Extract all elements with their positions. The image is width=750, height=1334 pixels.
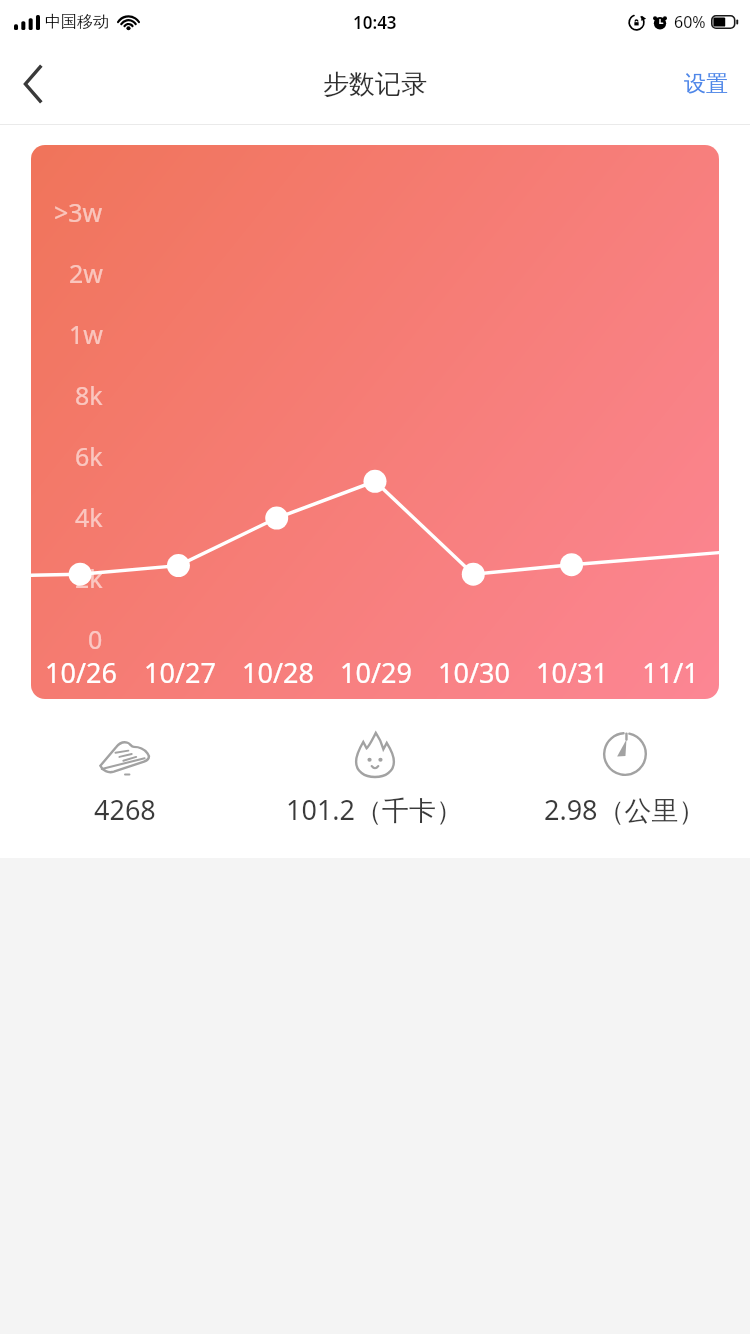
staticText: 6k [75,439,103,471]
staticText: 101.2（千卡） [286,791,464,828]
staticText: 10/31 [536,654,608,691]
button[interactable]: >3w [31,145,719,699]
staticText: 10/28 [242,654,314,691]
staticText: 8k [75,378,103,410]
staticText: 中国移动 [45,12,109,32]
button[interactable]: Distance [500,725,750,828]
button[interactable]: Back [0,44,66,124]
staticText: 2k [75,561,103,593]
staticText: 步数记录 [323,68,427,101]
staticText: 10/27 [144,654,216,691]
staticText: 1w [69,317,103,349]
button[interactable]: Steps [0,725,250,828]
staticText: 11/1 [642,654,699,691]
staticText: 2.98（公里） [544,791,706,828]
button[interactable]: 设置 [662,44,750,124]
staticText: 设置 [684,70,728,98]
staticText: 10:43 [353,11,397,34]
staticText: 4268 [94,791,156,828]
staticText: 10/29 [340,654,412,691]
staticText: 10/30 [438,654,510,691]
staticText: 60% [674,11,706,33]
staticText: >3w [54,195,103,227]
staticText: 0 [88,622,103,654]
button[interactable]: Calories [250,725,500,828]
staticText: 10/26 [45,654,117,691]
staticText: 2w [69,256,103,288]
staticText: 4k [75,500,103,532]
